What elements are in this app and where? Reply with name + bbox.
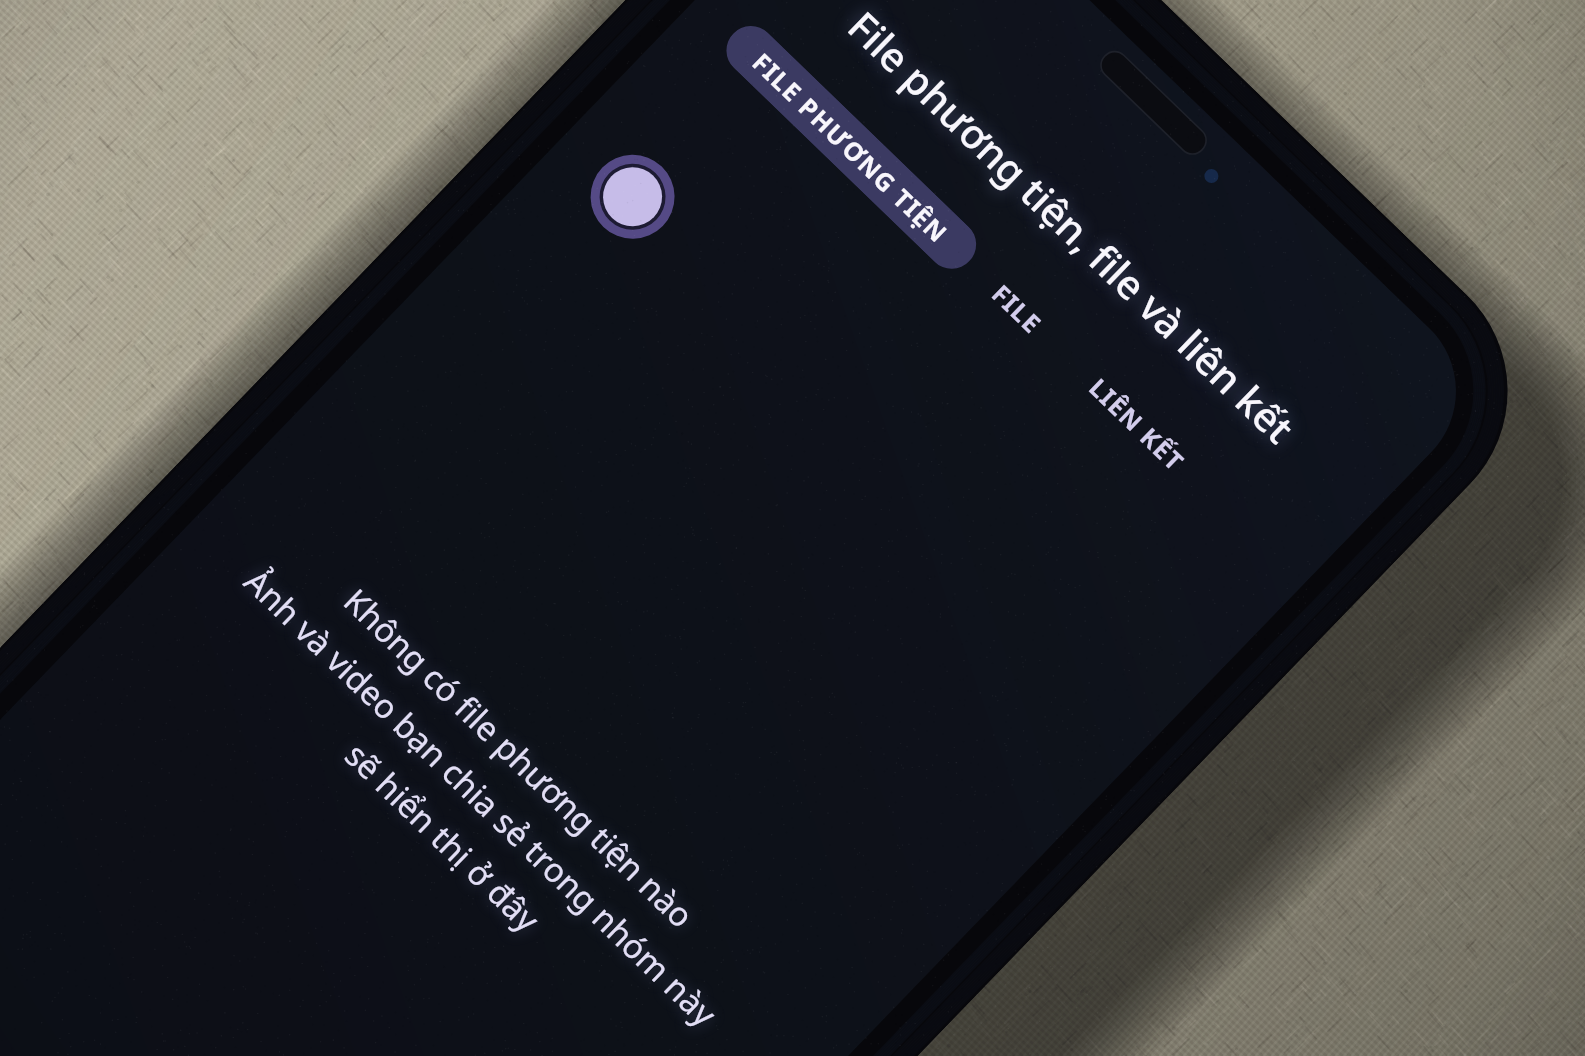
staticText: FILE PHƯƠNG TIỆN bbox=[746, 45, 956, 250]
staticText: Không có file phương tiện nào Ảnh và vid… bbox=[116, 492, 793, 1056]
button[interactable]: LIÊN KẾT bbox=[1049, 337, 1226, 510]
button[interactable]: FILE PHƯƠNG TIỆN bbox=[716, 16, 986, 279]
button[interactable]: Group photo bbox=[567, 132, 698, 262]
staticText: LIÊN KẾT bbox=[1082, 370, 1192, 478]
staticText: FILE bbox=[985, 276, 1050, 341]
staticText: File phương tiện, file và liên kết bbox=[838, 0, 1307, 454]
button[interactable]: FILE bbox=[952, 244, 1083, 373]
